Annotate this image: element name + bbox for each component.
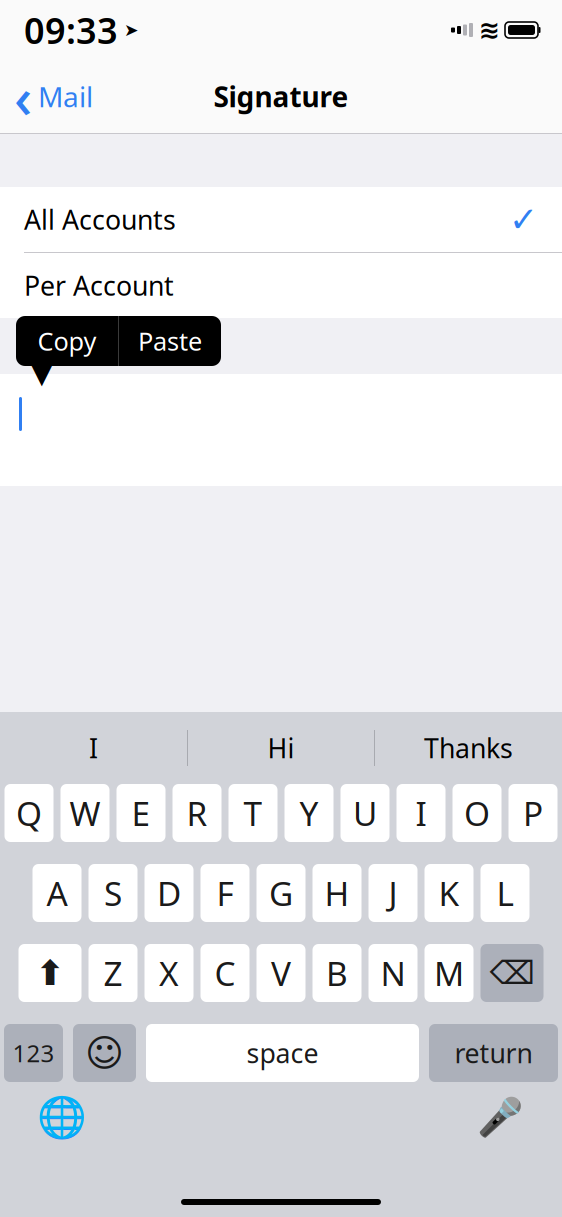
staticText: return [454, 1035, 532, 1071]
staticText: Thanks [424, 730, 513, 766]
staticText: Q [16, 791, 42, 835]
button[interactable]: U [340, 784, 389, 842]
button[interactable]: Delete [480, 944, 543, 1002]
button[interactable]: W [60, 784, 109, 842]
staticText: space [246, 1035, 318, 1071]
button[interactable]: L [480, 864, 529, 922]
button[interactable]: F [200, 864, 249, 922]
button[interactable]: All Accounts [0, 187, 562, 252]
staticText: O [464, 791, 490, 835]
button[interactable]: Q [4, 784, 53, 842]
button[interactable]: I [0, 713, 187, 783]
button[interactable]: R [172, 784, 221, 842]
staticText: ≋ [478, 16, 499, 44]
button[interactable]: M [424, 944, 473, 1002]
staticText: ☺ [85, 1032, 124, 1074]
staticText: G [269, 871, 293, 915]
button[interactable]: D [144, 864, 193, 922]
staticText: 🌐 [37, 1094, 87, 1140]
staticText: K [438, 871, 459, 915]
button[interactable]: I [396, 784, 445, 842]
staticText: I [89, 730, 98, 766]
staticText: F [216, 871, 233, 915]
staticText: R [186, 791, 207, 835]
button[interactable]: S [88, 864, 137, 922]
staticText: D [157, 871, 181, 915]
button[interactable]: Copy [16, 316, 118, 366]
staticText: U [353, 791, 377, 835]
staticText: A [46, 871, 67, 915]
staticText: Copy [37, 324, 96, 358]
button[interactable]: B [312, 944, 361, 1002]
staticText: Z [103, 951, 122, 995]
staticText: 09:33 [24, 6, 118, 54]
button[interactable]: X [144, 944, 193, 1002]
staticText: W [69, 791, 100, 835]
button[interactable]: 123 [4, 1024, 63, 1082]
staticText: B [326, 951, 348, 995]
button[interactable]: O [452, 784, 501, 842]
button[interactable]: G [256, 864, 305, 922]
staticText: L [496, 871, 513, 915]
button[interactable]: Hi [188, 713, 374, 783]
staticText: N [380, 951, 405, 995]
staticText: Hi [267, 730, 294, 766]
staticText: ⌫ [489, 955, 534, 991]
button[interactable]: Z [88, 944, 137, 1002]
staticText: V [271, 951, 291, 995]
staticText: Y [299, 791, 318, 835]
staticText: T [243, 791, 262, 835]
button[interactable]: N [368, 944, 417, 1002]
button[interactable]: A [32, 864, 81, 922]
button[interactable]: C [200, 944, 249, 1002]
staticText: Signature [213, 78, 348, 115]
button[interactable]: Y [284, 784, 333, 842]
button[interactable]: space [146, 1024, 419, 1082]
button[interactable]: Emoji [73, 1024, 136, 1082]
staticText: ✓ [509, 200, 538, 239]
staticText: Paste [138, 324, 202, 358]
staticText: C [214, 951, 235, 995]
staticText: Per Account [24, 268, 174, 303]
button[interactable]: return [429, 1024, 558, 1082]
staticText: M [434, 951, 464, 995]
button[interactable]: Thanks [375, 713, 562, 783]
staticText: I [415, 791, 426, 835]
button[interactable]: V [256, 944, 305, 1002]
button[interactable]: Paste [119, 316, 221, 366]
staticText: E [131, 791, 150, 835]
button[interactable]: Dictation [472, 1089, 528, 1145]
button[interactable]: P [508, 784, 557, 842]
button[interactable]: Next keyboard [34, 1089, 90, 1145]
staticText: H [324, 871, 349, 915]
staticText: 🎤 [477, 1096, 523, 1138]
button[interactable]: Per Account [0, 253, 562, 318]
staticText: P [523, 791, 543, 835]
button[interactable]: K [424, 864, 473, 922]
button[interactable]: E [116, 784, 165, 842]
staticText: ➤ [124, 20, 139, 40]
button[interactable]: T [228, 784, 277, 842]
button[interactable]: J [368, 864, 417, 922]
staticText: ‹ [14, 59, 32, 134]
staticText: J [388, 871, 397, 915]
staticText: ▼ [30, 356, 53, 389]
button[interactable]: Shift [18, 944, 81, 1002]
staticText: Mail [38, 78, 93, 115]
button[interactable]: H [312, 864, 361, 922]
staticText: X [159, 951, 179, 995]
staticText: S [104, 871, 122, 915]
staticText: 123 [12, 1037, 54, 1069]
button[interactable]: ‹ [0, 72, 107, 120]
staticText: ⬆ [35, 953, 64, 993]
staticText: All Accounts [24, 202, 176, 237]
